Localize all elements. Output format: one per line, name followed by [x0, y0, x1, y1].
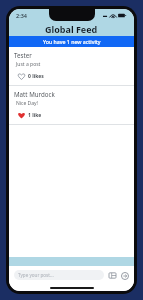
staticText: 1 like [28, 112, 42, 119]
staticText: 2:34 [16, 12, 27, 19]
other: Like [18, 73, 25, 80]
button[interactable]: You have 1 new activity [9, 36, 134, 47]
staticText: Global Feed [45, 23, 98, 35]
staticText: 0 likes [28, 73, 44, 80]
button[interactable]: Tester [9, 47, 134, 85]
staticText: Matt Murdock [14, 90, 55, 98]
other: Unlike [18, 112, 25, 119]
staticText: Tester [14, 51, 32, 59]
button[interactable]: Like [17, 72, 45, 81]
staticText: Nice Day! [16, 100, 38, 107]
button[interactable]: Type your post... [14, 270, 104, 280]
button[interactable]: Unlike [17, 111, 43, 120]
button[interactable]: Matt Murdock [9, 86, 134, 124]
staticText: Type your post... [18, 272, 54, 278]
staticText: You have 1 new activity [43, 38, 101, 45]
button[interactable]: Add image [108, 271, 117, 280]
staticText: Just a post [16, 61, 41, 68]
button[interactable]: Send post [120, 271, 129, 280]
